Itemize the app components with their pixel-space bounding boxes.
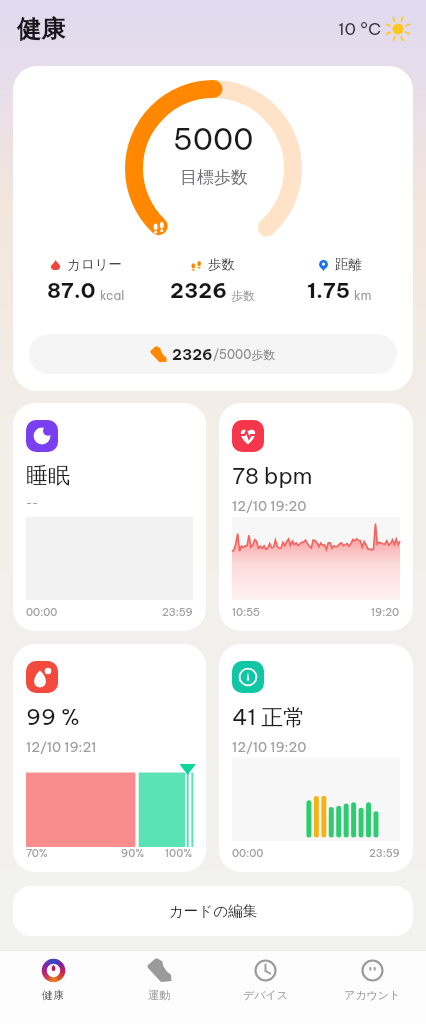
staticText: 12/10 19:20 (232, 497, 307, 514)
staticText: 41 正常 (232, 703, 306, 732)
button[interactable]: 2326 (29, 334, 397, 374)
staticText: 23:59 (162, 605, 193, 618)
button[interactable]: カロリー (23, 256, 149, 304)
staticText: 100% (165, 846, 193, 859)
button[interactable]: 78 bpm (219, 403, 413, 631)
staticText: デバイス (243, 988, 289, 1002)
staticText: 健康 (42, 988, 64, 1002)
button[interactable]: 睡眠 (13, 403, 206, 631)
staticText: 12/10 19:21 (26, 738, 97, 755)
staticText: 10:55 (232, 605, 261, 618)
staticText: 70% (26, 846, 48, 859)
staticText: km (354, 288, 372, 303)
staticText: 87.0 (47, 277, 96, 304)
staticText: 睡眠 (26, 462, 70, 490)
staticText: /5000歩数 (213, 347, 276, 363)
staticText: 00:00 (232, 846, 264, 859)
staticText: 90% (121, 846, 145, 859)
staticText: アカウント (344, 988, 401, 1002)
staticText: 99 % (26, 703, 80, 731)
button[interactable]: 99 % (13, 644, 206, 872)
staticText: 健康 (17, 14, 65, 44)
button[interactable]: Weather 10 degrees (338, 14, 413, 44)
staticText: 1.75 (307, 277, 350, 304)
staticText: 10 °C (338, 18, 382, 40)
button[interactable]: 41 正常 (219, 644, 413, 872)
staticText: 23:59 (369, 846, 400, 859)
staticText: 2326 (172, 345, 213, 364)
staticText: カードの編集 (169, 902, 258, 920)
button[interactable]: 運動 (106, 951, 212, 1024)
staticText: 00:00 (26, 605, 58, 618)
staticText: カロリー (67, 256, 122, 273)
button[interactable]: アカウント (319, 951, 426, 1024)
staticText: 19:20 (371, 605, 400, 618)
staticText: kcal (100, 288, 125, 303)
staticText: 78 bpm (232, 462, 313, 490)
staticText: 5000 (173, 120, 254, 158)
staticText: 運動 (148, 988, 170, 1002)
button[interactable]: 5000 (13, 66, 413, 391)
staticText: -- (26, 497, 39, 510)
button[interactable]: デバイス (212, 951, 319, 1024)
button[interactable]: 歩数 (149, 256, 276, 304)
staticText: 目標歩数 (180, 167, 248, 188)
staticText: 歩数 (231, 288, 255, 303)
staticText: 歩数 (208, 256, 235, 273)
button[interactable]: カードの編集 (13, 886, 413, 936)
staticText: 2326 (170, 277, 227, 304)
button[interactable]: 健康 (0, 951, 106, 1024)
staticText: 12/10 19:20 (232, 738, 307, 755)
button[interactable]: 距離 (276, 256, 403, 304)
staticText: 距離 (335, 256, 362, 273)
